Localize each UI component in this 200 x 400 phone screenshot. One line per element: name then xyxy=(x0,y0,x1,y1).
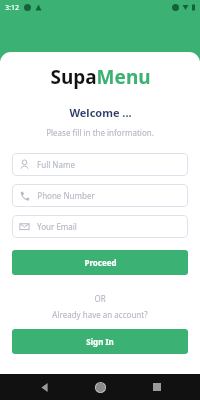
button[interactable]: Full Name xyxy=(12,153,188,176)
button[interactable]: Sign In xyxy=(12,329,188,354)
staticText: Your Email xyxy=(37,221,77,232)
staticText: Please fill in the information. xyxy=(46,127,154,138)
staticText: SupaMenu xyxy=(50,64,151,90)
staticText: Already have an account? xyxy=(52,309,148,320)
button[interactable]: Home xyxy=(87,374,113,400)
button[interactable]: Your Email xyxy=(12,215,188,238)
staticText: OR xyxy=(94,293,106,304)
button[interactable]: Proceed xyxy=(12,250,188,275)
staticText: 3:12 xyxy=(5,3,19,13)
button[interactable]: Back xyxy=(31,374,57,400)
button[interactable]: Recents xyxy=(144,374,170,400)
staticText: Sign In xyxy=(86,336,114,347)
staticText: Phone Number xyxy=(37,190,95,201)
staticText: Full Name xyxy=(37,159,75,170)
button[interactable]: Already have an account? xyxy=(52,309,148,320)
button[interactable]: Phone Number xyxy=(12,184,188,207)
staticText: Welcome ... xyxy=(69,105,132,120)
staticText: Proceed xyxy=(84,257,117,268)
